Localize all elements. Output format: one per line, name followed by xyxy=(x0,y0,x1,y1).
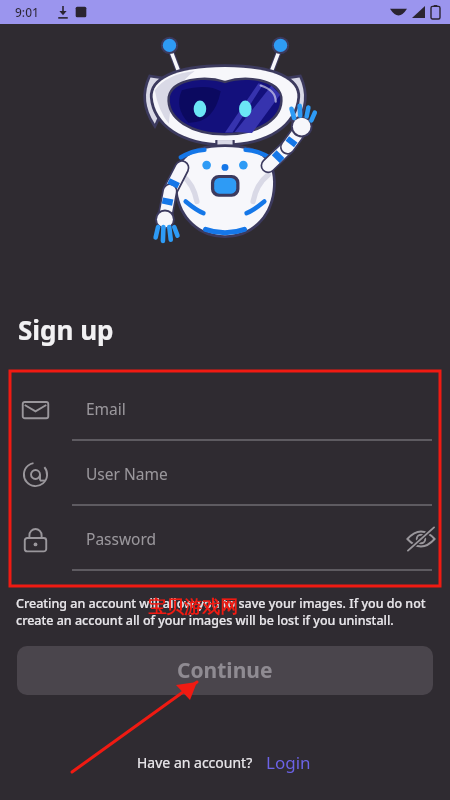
staticText: Continue xyxy=(177,656,273,685)
button[interactable]: User Name xyxy=(0,446,450,511)
staticText: Have an account? xyxy=(137,753,253,772)
other: User Name xyxy=(21,460,50,489)
button[interactable]: Email xyxy=(0,381,450,446)
staticText: Password xyxy=(86,528,157,549)
other: Email xyxy=(21,395,50,424)
staticText: 9:01 xyxy=(15,4,39,20)
button[interactable]: Login xyxy=(264,749,313,776)
staticText: 宝贝游戏网 xyxy=(148,596,238,619)
staticText: Login xyxy=(266,751,311,774)
staticText: Creating an account will allow you to sa… xyxy=(16,595,434,629)
button[interactable]: Continue xyxy=(17,646,433,695)
staticText: User Name xyxy=(86,463,168,484)
staticText: Email xyxy=(86,398,126,419)
button[interactable]: Password xyxy=(0,511,450,576)
button[interactable]: Toggle password visibility xyxy=(404,522,438,556)
other: Password xyxy=(21,525,50,554)
staticText: Sign up xyxy=(18,312,114,347)
